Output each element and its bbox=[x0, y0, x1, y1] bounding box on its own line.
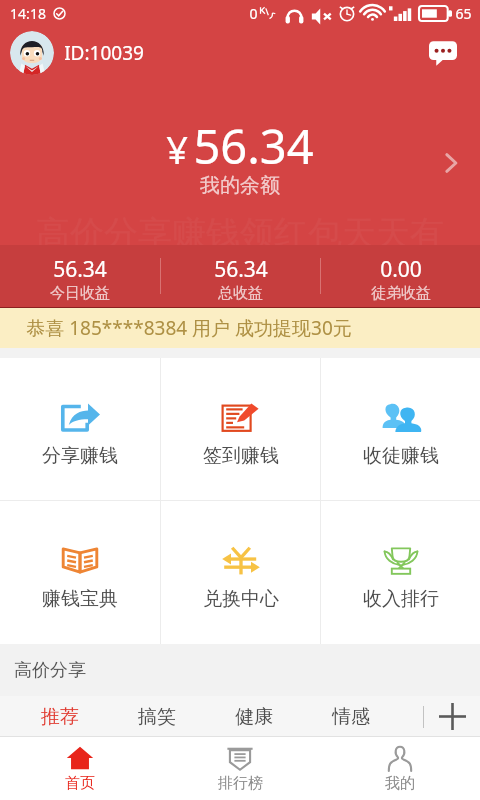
staticText: 65 bbox=[455, 4, 472, 23]
button[interactable]: Profile avatar bbox=[10, 31, 54, 75]
button[interactable]: 收入排行 bbox=[321, 501, 480, 644]
staticText: 兑换中心 bbox=[203, 587, 279, 611]
staticText: 恭喜 185****8384 用户 成功提现30元 bbox=[26, 315, 352, 341]
staticText: 0.00 bbox=[380, 255, 422, 284]
staticText: 推荐 bbox=[41, 705, 79, 729]
staticText: 今日收益 bbox=[50, 284, 110, 303]
staticText: 56.34 bbox=[53, 255, 107, 284]
staticText: ¥ bbox=[166, 123, 188, 175]
staticText: 排行榜 bbox=[218, 774, 263, 793]
staticText: 徒弟收益 bbox=[371, 284, 431, 303]
button[interactable]: 0.00 bbox=[321, 249, 480, 303]
staticText: 56.34 bbox=[214, 255, 268, 284]
staticText: 健康 bbox=[235, 705, 273, 729]
staticText: 56.34 bbox=[193, 114, 314, 178]
button[interactable]: 我的 bbox=[320, 737, 480, 800]
button[interactable]: 健康 bbox=[205, 696, 302, 737]
staticText: 搞笑 bbox=[138, 705, 176, 729]
staticText: 我的 bbox=[385, 774, 415, 793]
staticText: 14:18 bbox=[10, 4, 46, 23]
button[interactable]: 56.34 bbox=[0, 249, 160, 303]
button[interactable]: 搞笑 bbox=[108, 696, 205, 737]
button[interactable]: 首页 bbox=[0, 737, 160, 800]
staticText: 赚钱宝典 bbox=[42, 587, 118, 611]
button[interactable]: 赚钱宝典 bbox=[0, 501, 160, 644]
button[interactable]: 签到赚钱 bbox=[161, 358, 320, 500]
staticText: 高价分享 bbox=[14, 659, 86, 682]
button[interactable]: 兑换中心 bbox=[161, 501, 320, 644]
button[interactable]: 推荐 bbox=[11, 696, 108, 737]
button[interactable]: 情感 bbox=[302, 696, 399, 737]
button[interactable]: Messages bbox=[424, 34, 462, 72]
staticText: 收入排行 bbox=[363, 587, 439, 611]
staticText: 分享赚钱 bbox=[42, 444, 118, 468]
button[interactable]: 分享赚钱 bbox=[0, 358, 160, 500]
staticText: 收徒赚钱 bbox=[363, 444, 439, 468]
staticText: 总收益 bbox=[218, 284, 263, 303]
button[interactable]: ¥ bbox=[0, 80, 480, 245]
staticText: 我的余额 bbox=[200, 173, 280, 198]
button[interactable]: 收徒赚钱 bbox=[321, 358, 480, 500]
button[interactable]: 恭喜 185****8384 用户 成功提现30元 bbox=[0, 308, 480, 348]
staticText: 首页 bbox=[65, 774, 95, 793]
staticText: ID:10039 bbox=[64, 40, 144, 66]
staticText: 情感 bbox=[332, 705, 370, 729]
staticText: 0 bbox=[249, 4, 258, 23]
button[interactable]: 56.34 bbox=[161, 249, 320, 303]
button[interactable]: Add bbox=[424, 696, 480, 737]
button[interactable]: 排行榜 bbox=[160, 737, 320, 800]
staticText: 签到赚钱 bbox=[203, 444, 279, 468]
